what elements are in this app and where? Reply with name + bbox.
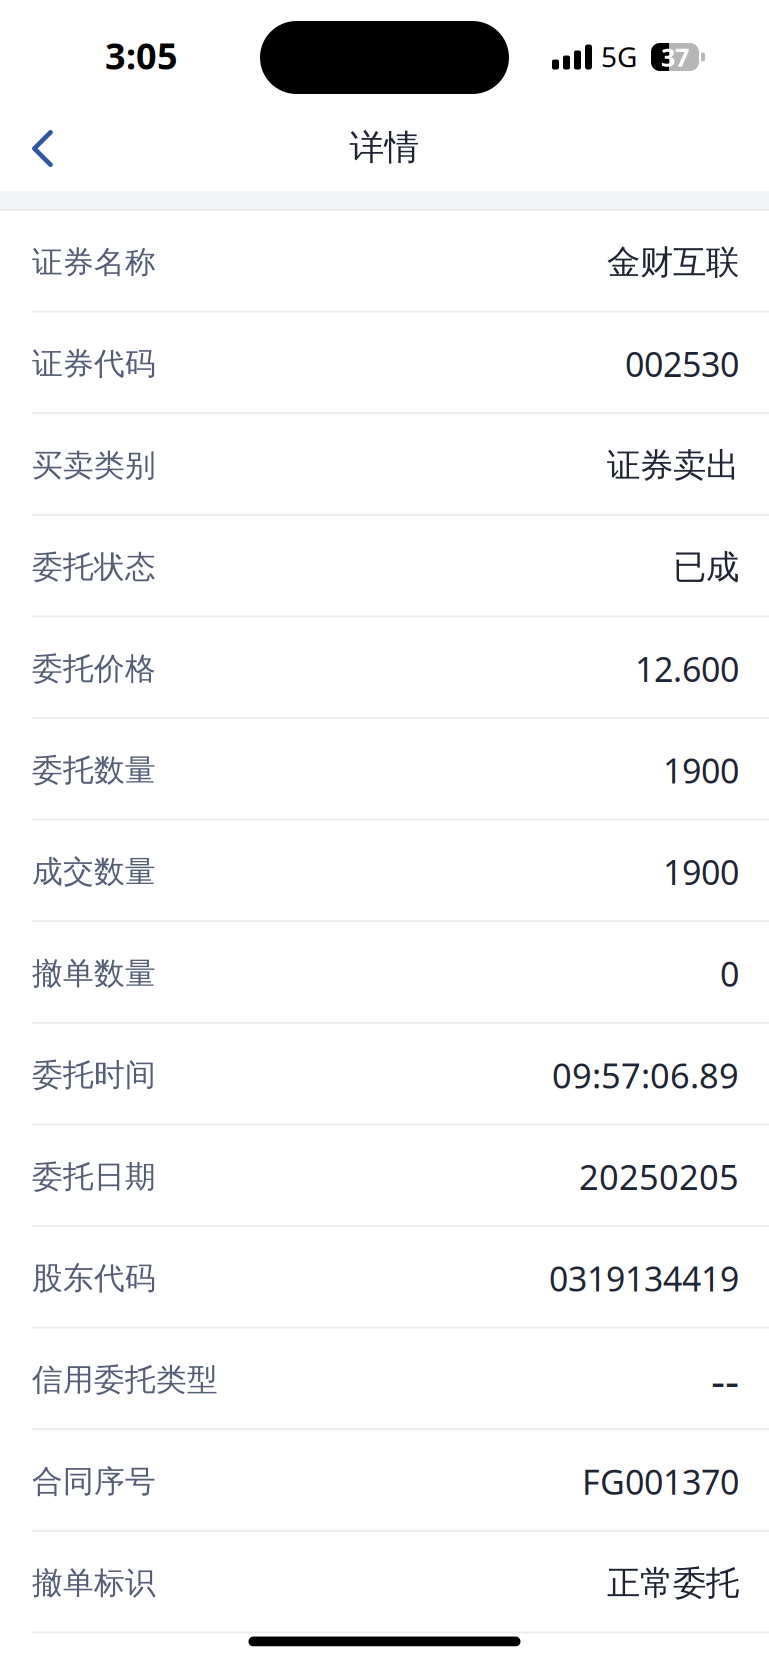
staticText: FG001370 (582, 1458, 739, 1505)
staticText: 002530 (625, 341, 739, 387)
staticText: 证券名称 (32, 243, 156, 282)
button[interactable]: 证券代码 (0, 313, 769, 414)
button[interactable]: 股东代码 (0, 1227, 769, 1329)
staticText: 1900 (663, 747, 739, 793)
staticText: 成交数量 (32, 853, 156, 891)
staticText: 委托状态 (32, 548, 156, 586)
button[interactable]: 委托时间 (0, 1024, 769, 1125)
button[interactable]: 撤单数量 (0, 922, 769, 1024)
staticText: -- (711, 1350, 739, 1410)
staticText: 0 (720, 950, 739, 997)
staticText: 证券卖出 (607, 444, 739, 486)
staticText: 信用委托类型 (32, 1361, 218, 1399)
staticText: 37 (661, 40, 689, 74)
staticText: 已成 (673, 546, 739, 588)
staticText: 委托时间 (32, 1056, 156, 1094)
staticText: 金财互联 (607, 241, 739, 283)
button[interactable]: 撤单标识 (0, 1532, 769, 1633)
button[interactable]: 买卖类别 (0, 414, 769, 516)
staticText: 1900 (663, 849, 739, 895)
staticText: 09:57:06.89 (552, 1052, 739, 1099)
button[interactable]: 成交数量 (0, 821, 769, 922)
staticText: 撤单数量 (32, 954, 156, 993)
button[interactable]: 委托数量 (0, 719, 769, 821)
staticText: 详情 (349, 126, 419, 169)
staticText: 合同序号 (32, 1462, 156, 1501)
staticText: 正常委托 (607, 1562, 739, 1604)
button[interactable]: 委托日期 (0, 1125, 769, 1227)
staticText: 撤单标识 (32, 1564, 156, 1602)
staticText: 12.600 (635, 645, 739, 692)
staticText: 买卖类别 (32, 446, 156, 485)
staticText: 委托价格 (32, 649, 156, 688)
staticText: 股东代码 (32, 1259, 156, 1298)
button[interactable]: 合同序号 (0, 1430, 769, 1532)
staticText: 证券代码 (32, 345, 156, 383)
button[interactable]: 委托状态 (0, 516, 769, 617)
staticText: 0319134419 (549, 1255, 739, 1301)
button[interactable]: 委托价格 (0, 617, 769, 719)
staticText: 5G (601, 37, 637, 75)
button[interactable]: Back (0, 110, 86, 191)
staticText: 20250205 (579, 1153, 739, 1200)
button[interactable]: 信用委托类型 (0, 1329, 769, 1430)
button[interactable]: 证券名称 (0, 211, 769, 313)
staticText: 委托日期 (32, 1157, 156, 1196)
staticText: 委托数量 (32, 751, 156, 790)
staticText: 3:05 (105, 31, 178, 80)
